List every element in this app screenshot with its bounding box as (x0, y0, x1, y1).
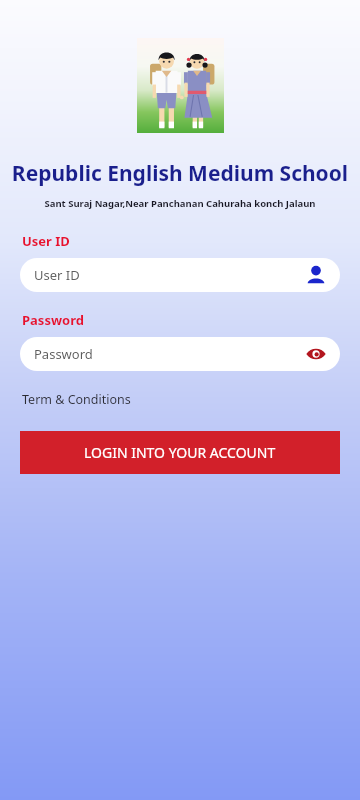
staticText: LOGIN INTO YOUR ACCOUNT (84, 443, 276, 462)
other: Show password (305, 343, 327, 365)
button[interactable]: LOGIN INTO YOUR ACCOUNT (20, 431, 340, 474)
staticText: Sant Suraj Nagar,Near Panchanan Cahuraha… (0, 197, 360, 210)
staticText: Password (22, 311, 84, 329)
other: User account (305, 264, 327, 286)
button[interactable]: Term & Conditions (20, 388, 133, 411)
staticText: Term & Conditions (22, 391, 131, 408)
staticText: Password (34, 345, 305, 363)
button[interactable]: User ID (20, 258, 340, 292)
button[interactable]: Password (20, 337, 340, 371)
staticText: User ID (22, 232, 70, 250)
staticText: Republic English Medium School (0, 159, 360, 188)
staticText: User ID (34, 266, 305, 284)
